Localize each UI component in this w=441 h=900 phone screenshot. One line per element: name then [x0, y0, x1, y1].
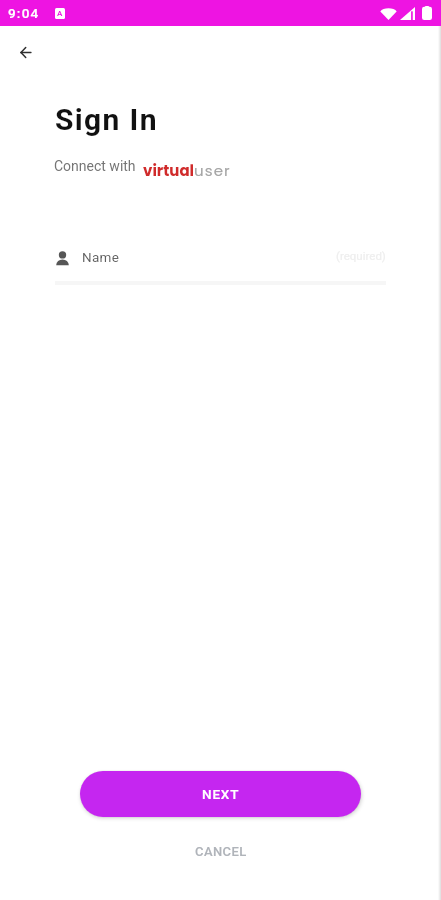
button[interactable]: NEXT	[80, 771, 361, 817]
staticText: (required)	[336, 249, 386, 262]
button[interactable]: CANCEL	[0, 817, 441, 885]
staticText: Name	[82, 249, 120, 265]
button[interactable]: Back	[0, 26, 50, 78]
staticText: virtualuser	[143, 160, 231, 181]
staticText: Sign In	[55, 102, 158, 137]
staticText: CANCEL	[195, 844, 247, 859]
staticText: NEXT	[202, 786, 240, 802]
staticText: A	[57, 9, 63, 18]
staticText: 9:04	[8, 5, 40, 21]
staticText: Connect with	[54, 158, 136, 174]
